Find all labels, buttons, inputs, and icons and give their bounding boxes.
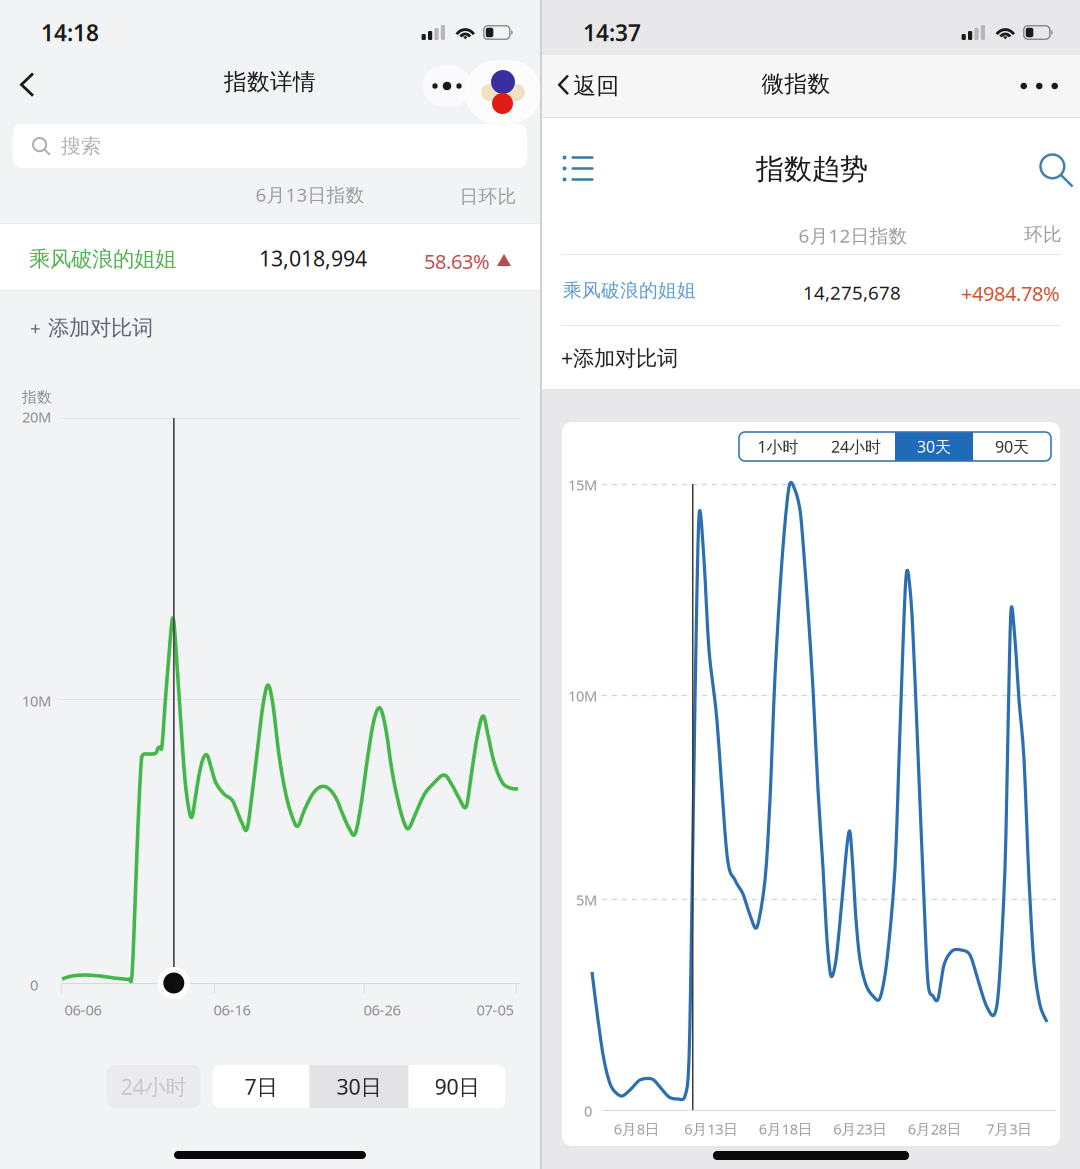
staticText: 90天 bbox=[995, 436, 1029, 457]
staticText: 0 bbox=[30, 975, 38, 994]
button[interactable]: 24小时 bbox=[106, 1065, 200, 1108]
staticText: 14:37 bbox=[583, 17, 641, 47]
staticText: 58.63% bbox=[424, 248, 490, 275]
staticText: 添加对比词 bbox=[48, 315, 153, 341]
button[interactable]: 1小时 bbox=[739, 432, 817, 461]
button[interactable]: More options bbox=[998, 67, 1080, 105]
staticText: 10M bbox=[22, 691, 51, 710]
staticText: 24小时 bbox=[120, 1072, 186, 1101]
staticText: 10M bbox=[568, 686, 597, 705]
button[interactable]: Mini program profile bbox=[465, 60, 541, 123]
staticText: 指数详情 bbox=[224, 68, 316, 96]
staticText: 乘风破浪的姐姐 bbox=[563, 279, 696, 302]
staticText: 20M bbox=[22, 407, 51, 426]
staticText: 0 bbox=[584, 1101, 592, 1120]
button[interactable]: Back bbox=[0, 62, 52, 110]
staticText: 6月13日 bbox=[684, 1119, 738, 1138]
staticText: 7月3日 bbox=[986, 1119, 1032, 1138]
staticText: 14,275,678 bbox=[803, 280, 901, 305]
staticText: 6月13日指数 bbox=[255, 182, 364, 207]
staticText: 14:18 bbox=[41, 17, 99, 47]
staticText: 6月28日 bbox=[908, 1119, 962, 1138]
staticText: 6月23日 bbox=[833, 1119, 887, 1138]
staticText: +4984.78% bbox=[961, 280, 1060, 307]
staticText: + bbox=[30, 316, 41, 340]
staticText: +添加对比词 bbox=[561, 343, 678, 372]
button[interactable]: Search bbox=[1029, 143, 1080, 197]
staticText: 07-05 bbox=[476, 1000, 513, 1019]
staticText: 5M bbox=[576, 890, 597, 909]
staticText: 13,018,994 bbox=[259, 244, 367, 272]
button[interactable]: 90日 bbox=[408, 1065, 505, 1108]
button[interactable]: 30天 bbox=[895, 432, 973, 461]
staticText: 30天 bbox=[917, 436, 951, 457]
staticText: 7日 bbox=[244, 1072, 277, 1101]
staticText: 6月12日指数 bbox=[798, 223, 907, 248]
staticText: 6月8日 bbox=[614, 1119, 660, 1138]
staticText: 06-16 bbox=[213, 1000, 250, 1019]
button[interactable]: 7日 bbox=[212, 1065, 309, 1108]
staticText: 06-06 bbox=[64, 1000, 101, 1019]
button[interactable]: +添加对比词 bbox=[542, 327, 678, 388]
button[interactable]: 返回 bbox=[542, 62, 633, 110]
button[interactable]: 90天 bbox=[973, 432, 1051, 461]
staticText: 90日 bbox=[434, 1072, 479, 1101]
button[interactable]: List view bbox=[552, 142, 604, 195]
staticText: 15M bbox=[568, 475, 597, 494]
staticText: 24小时 bbox=[831, 436, 881, 457]
staticText: 06-26 bbox=[363, 1000, 400, 1019]
staticText: 搜索 bbox=[61, 134, 101, 158]
staticText: 30日 bbox=[336, 1072, 381, 1101]
staticText: 指数趋势 bbox=[756, 152, 868, 186]
staticText: 环比 bbox=[1024, 223, 1062, 246]
staticText: 1小时 bbox=[757, 436, 798, 457]
button[interactable]: 30日 bbox=[310, 1065, 407, 1108]
staticText: 6月18日 bbox=[759, 1119, 813, 1138]
staticText: 指数 bbox=[22, 388, 52, 406]
staticText: 日环比 bbox=[459, 185, 516, 208]
staticText: 乘风破浪的姐姐 bbox=[29, 246, 176, 272]
button[interactable]: + bbox=[0, 298, 153, 358]
staticText: 返回 bbox=[573, 72, 619, 100]
staticText: 微指数 bbox=[761, 70, 830, 98]
button[interactable]: 24小时 bbox=[817, 432, 895, 461]
button[interactable]: More bbox=[416, 65, 464, 106]
